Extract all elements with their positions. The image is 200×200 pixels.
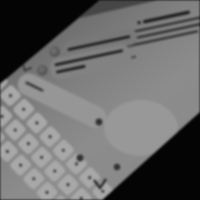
button[interactable] — [0, 0, 200, 200]
